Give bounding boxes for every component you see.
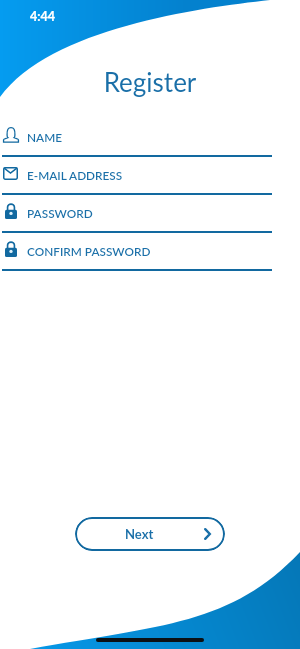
button[interactable]: Next [75,517,225,551]
staticText: PASSWORD [27,206,93,220]
other: Next [204,528,211,540]
button[interactable]: E-MAIL ADDRESS [0,165,300,203]
button[interactable]: CONFIRM PASSWORD [0,241,300,279]
staticText: 4:44 [30,9,55,24]
staticText: E-MAIL ADDRESS [27,168,123,182]
button[interactable]: NAME [0,127,300,165]
staticText: Register [0,66,300,97]
button[interactable]: PASSWORD [0,203,300,241]
staticText: Next [125,526,154,542]
staticText: NAME [27,130,63,144]
staticText: CONFIRM PASSWORD [27,244,151,258]
